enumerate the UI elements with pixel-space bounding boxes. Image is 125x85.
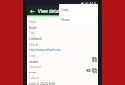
- staticText: Created: [29, 76, 39, 80]
- button[interactable]: Type: [27, 30, 98, 41]
- staticText: ••••••: [29, 70, 37, 74]
- staticText: Password: [29, 65, 41, 69]
- staticText: June 4, 2024 8:56: [29, 81, 56, 85]
- button[interactable]: Show password: [85, 67, 91, 73]
- staticText: aaaaa: [29, 59, 39, 63]
- staticText: Website: [29, 43, 39, 47]
- staticText: Login: [29, 54, 36, 58]
- button[interactable]: Copy: [61, 7, 98, 12]
- staticText: Name: [29, 20, 37, 24]
- staticText: Citibank: [29, 36, 42, 40]
- staticText: Bank: [29, 25, 37, 29]
- button[interactable]: Copy: [91, 67, 97, 73]
- staticText: Copy: [61, 7, 69, 12]
- button[interactable]: Login: [27, 53, 98, 64]
- button[interactable]: Name: [27, 19, 98, 30]
- staticText: Share: [61, 17, 71, 22]
- staticText: 4:12: [89, 1, 96, 6]
- button[interactable]: Created: [27, 75, 98, 85]
- button[interactable]: Password: [27, 64, 98, 75]
- staticText: Type: [29, 31, 35, 35]
- staticText: http://www.citibank.com: [29, 48, 62, 52]
- button[interactable]: Share: [61, 17, 98, 22]
- button[interactable]: Back: [29, 8, 35, 14]
- button[interactable]: Website: [27, 42, 98, 53]
- staticText: View details: [38, 8, 63, 14]
- button[interactable]: Copy: [91, 56, 97, 62]
